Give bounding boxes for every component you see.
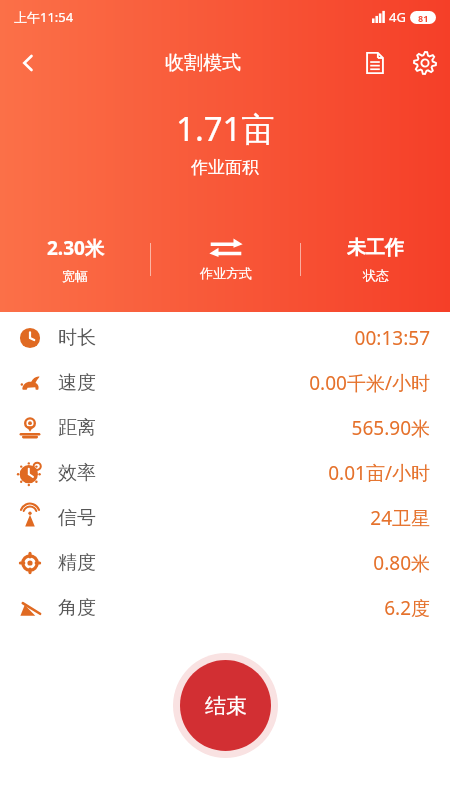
staticText: 0.00千米/小时: [309, 370, 430, 396]
staticText: 81: [418, 12, 429, 24]
staticText: 1.71亩: [176, 106, 275, 151]
staticText: 上午11:54: [14, 8, 74, 26]
button[interactable]: Settings: [400, 34, 450, 92]
button[interactable]: 结束: [173, 653, 278, 758]
staticText: 时长: [58, 326, 96, 350]
button[interactable]: 信号: [0, 495, 450, 540]
button[interactable]: 效率: [0, 450, 450, 495]
staticText: 宽幅: [62, 268, 88, 284]
staticText: 结束: [205, 693, 247, 719]
staticText: 6.2度: [384, 595, 430, 621]
staticText: 0.80米: [373, 550, 430, 576]
staticText: 效率: [58, 461, 96, 485]
staticText: 状态: [363, 267, 389, 283]
staticText: 角度: [58, 596, 96, 620]
staticText: 信号: [58, 506, 96, 530]
button[interactable]: Records: [350, 34, 400, 92]
staticText: 收割模式: [165, 51, 241, 75]
staticText: 作业面积: [191, 157, 259, 178]
staticText: 作业方式: [200, 265, 252, 281]
staticText: 00:13:57: [354, 325, 430, 351]
staticText: 距离: [58, 416, 96, 440]
staticText: 4G: [389, 8, 406, 26]
staticText: 精度: [58, 551, 96, 575]
button[interactable]: 速度: [0, 360, 450, 405]
button[interactable]: 作业方式: [151, 238, 300, 281]
button[interactable]: 时长: [0, 315, 450, 360]
staticText: 速度: [58, 371, 96, 395]
button[interactable]: Back: [0, 34, 56, 92]
staticText: 24卫星: [370, 505, 430, 531]
staticText: 2.30米: [47, 235, 104, 261]
staticText: 0.01亩/小时: [328, 460, 430, 486]
button[interactable]: 距离: [0, 405, 450, 450]
button[interactable]: 角度: [0, 585, 450, 630]
staticText: 未工作: [347, 236, 404, 260]
staticText: 565.90米: [351, 415, 430, 441]
button[interactable]: 精度: [0, 540, 450, 585]
